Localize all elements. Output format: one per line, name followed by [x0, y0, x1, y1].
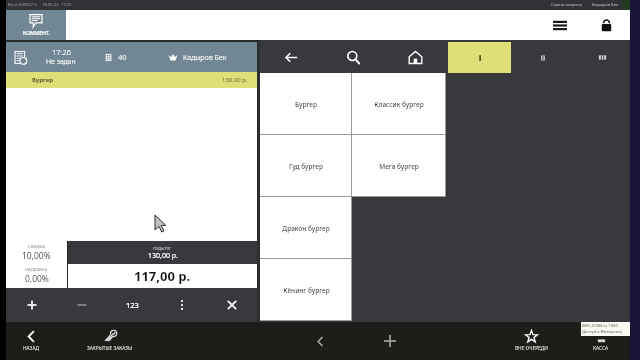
button[interactable]: 123: [107, 288, 157, 322]
staticText: подытог: [153, 245, 172, 251]
other: Order: [14, 51, 27, 64]
button[interactable]: Бургер: [260, 73, 352, 135]
staticText: КАССА: [593, 345, 609, 352]
button[interactable]: Grid view: [574, 42, 630, 73]
button[interactable]: Home: [384, 42, 446, 73]
staticText: 130,00 р.: [148, 251, 178, 261]
button[interactable]: Search: [322, 42, 384, 73]
staticText: Вы в 8:08/27.6: [8, 2, 37, 8]
staticText: Мега бургер: [379, 162, 419, 171]
button[interactable]: More options: [157, 288, 207, 322]
button[interactable]: Lock: [583, 10, 629, 40]
staticText: СКИДКА: [28, 244, 45, 250]
staticText: 40: [118, 52, 127, 62]
staticText: Дракон бургер: [282, 224, 330, 233]
staticText: КОММЕНТ.: [23, 30, 50, 37]
staticText: ВНЕ ОЧЕРЕДИ: [515, 345, 548, 352]
staticText: Бургер: [32, 76, 54, 84]
staticText: НАЗАД: [23, 345, 39, 352]
staticText: Не задан: [46, 57, 76, 67]
staticText: НАДБАВКА: [25, 267, 48, 273]
staticText: Бургер: [295, 100, 317, 109]
staticText: 130,00 р.: [222, 76, 248, 84]
button[interactable]: КАССА: [556, 322, 640, 360]
staticText: 123: [126, 300, 139, 310]
staticText: 18.05.22 17:27: [42, 2, 72, 8]
button[interactable]: СКИДКА: [6, 241, 67, 264]
button[interactable]: КОММЕНТ.: [6, 10, 66, 40]
button[interactable]: Minus: [57, 288, 107, 322]
button[interactable]: Single column view: [448, 42, 511, 73]
staticText: 0,00%: [25, 273, 49, 285]
staticText: WiFi-DOM.ru 1000: [582, 323, 618, 329]
staticText: 17:26: [52, 47, 71, 57]
button[interactable]: Back: [260, 42, 322, 73]
staticText: Кадыров Бек: [183, 52, 227, 62]
button[interactable]: Бургер: [6, 72, 257, 88]
button[interactable]: Close: [207, 288, 257, 322]
button[interactable]: Кёнинг бургер: [260, 259, 352, 321]
staticText: Гуд бургер: [289, 162, 323, 171]
button[interactable]: Menu: [537, 10, 583, 40]
staticText: Смена открыта: [551, 2, 582, 8]
button[interactable]: Add: [376, 322, 404, 360]
button[interactable]: Order: [6, 42, 257, 72]
button[interactable]: подытог: [68, 241, 257, 264]
button[interactable]: Back: [306, 322, 334, 360]
button[interactable]: Мега бургер: [352, 135, 446, 197]
button[interactable]: Дракон бургер: [260, 197, 352, 259]
button[interactable]: Two column view: [511, 42, 574, 73]
staticText: ЗАКРЫТЫЕ ЗАКАЗЫ: [87, 345, 133, 352]
staticText: 10,00%: [22, 250, 51, 262]
button[interactable]: НАЗАД: [0, 322, 76, 360]
button[interactable]: Классик бургер: [352, 73, 446, 135]
button[interactable]: ВНЕ ОЧЕРЕДИ: [486, 322, 576, 360]
staticText: Доступ к Интернету: [582, 329, 623, 335]
staticText: 117,00 р.: [134, 267, 191, 285]
button[interactable]: ЗАКРЫТЫЕ ЗАКАЗЫ: [65, 322, 155, 360]
button[interactable]: НАДБАВКА: [6, 264, 67, 288]
staticText: Классик бургер: [374, 100, 424, 109]
staticText: Кёнинг бургер: [283, 286, 330, 295]
staticText: Кадыров Бек: [592, 2, 619, 8]
button[interactable]: Add: [6, 288, 57, 322]
button[interactable]: 117,00 р.: [68, 264, 257, 288]
button[interactable]: Гуд бургер: [260, 135, 352, 197]
